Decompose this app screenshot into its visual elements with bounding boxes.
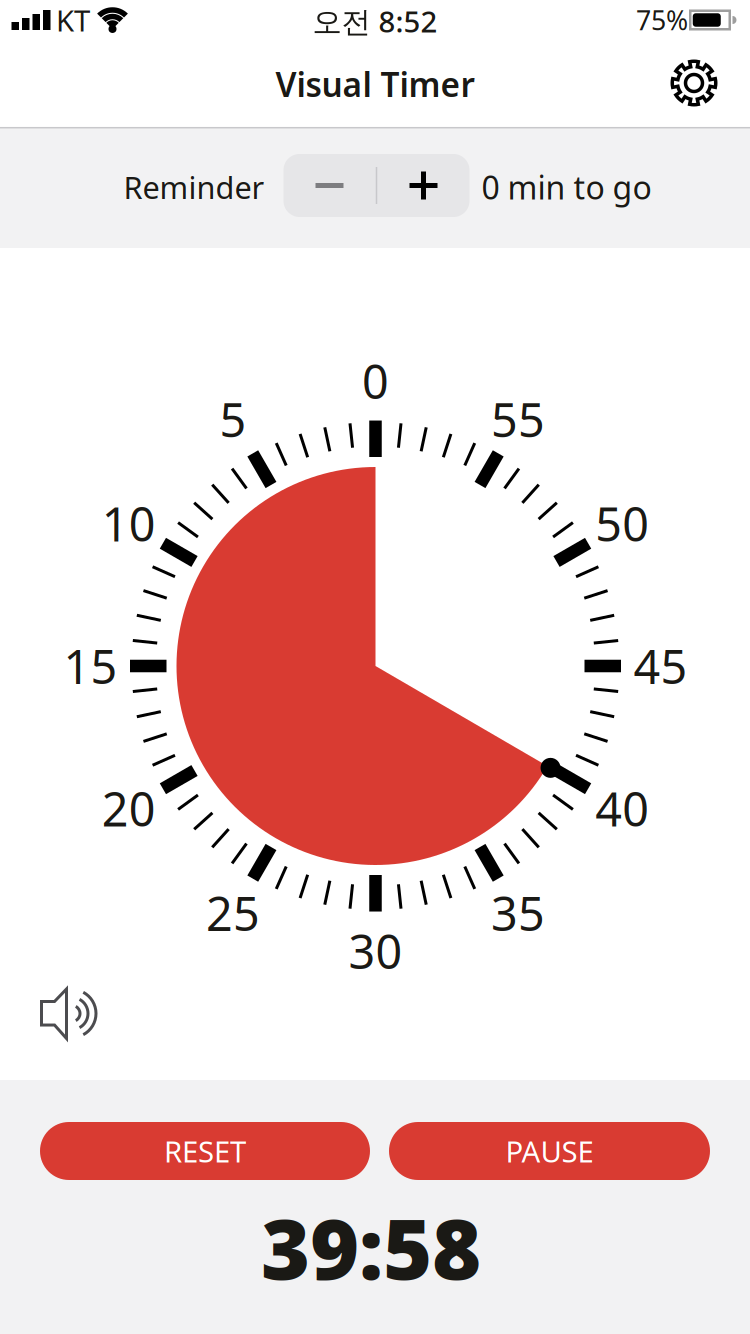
staticText: 40	[595, 777, 649, 839]
staticText: KT	[56, 0, 90, 39]
staticText: 35	[491, 882, 545, 944]
staticText: 5	[219, 388, 246, 450]
staticText: 39:58	[261, 1191, 481, 1303]
staticText: 50	[595, 492, 649, 554]
staticText: 10	[102, 492, 156, 554]
button[interactable]: Sound	[40, 986, 98, 1041]
staticText: RESET	[164, 1131, 246, 1170]
button[interactable]: RESET	[40, 1122, 370, 1180]
staticText: 0	[362, 350, 389, 412]
staticText: 25	[206, 882, 260, 944]
staticText: 75%	[636, 2, 688, 38]
button[interactable]: Settings	[664, 53, 724, 113]
staticText: 20	[102, 777, 156, 839]
staticText: Reminder	[123, 167, 264, 207]
button[interactable]: Decrease reminder	[283, 154, 375, 217]
staticText: 30	[348, 920, 402, 982]
staticText: 45	[633, 635, 687, 697]
button[interactable]: Increase reminder	[377, 154, 469, 217]
staticText: 15	[63, 635, 117, 697]
staticText: Visual Timer	[275, 62, 474, 106]
staticText: 오전 8:52	[312, 1, 437, 40]
staticText: 0 min to go	[481, 166, 651, 208]
button[interactable]: PAUSE	[389, 1122, 710, 1180]
staticText: 55	[491, 388, 545, 450]
staticText: PAUSE	[505, 1131, 593, 1170]
